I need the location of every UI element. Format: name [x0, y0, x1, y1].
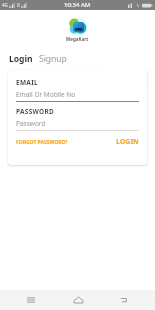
staticText: Password — [16, 119, 46, 128]
staticText: LOGIN — [116, 137, 139, 147]
button[interactable]: LOGIN — [116, 137, 139, 147]
staticText: FORGOT PASSWORD? — [16, 139, 68, 146]
button[interactable]: Login — [7, 51, 35, 67]
button[interactable]: Signup — [37, 51, 69, 67]
button[interactable]: Home — [63, 290, 93, 310]
staticText: PASSWORD — [16, 107, 55, 116]
staticText: 4G — [2, 2, 8, 8]
button[interactable]: Recent apps — [16, 290, 46, 310]
staticText: 10:34 AM — [64, 1, 91, 9]
staticText: 0 — [17, 2, 20, 8]
button[interactable]: Back — [109, 290, 139, 310]
staticText: Login — [9, 53, 33, 65]
staticText: Signup — [39, 53, 67, 65]
button[interactable]: FORGOT PASSWORD? — [16, 139, 68, 146]
staticText: MegaKart — [66, 36, 89, 42]
staticText: EMAIL — [16, 78, 38, 87]
staticText: Email Or Mobile No — [16, 90, 76, 99]
